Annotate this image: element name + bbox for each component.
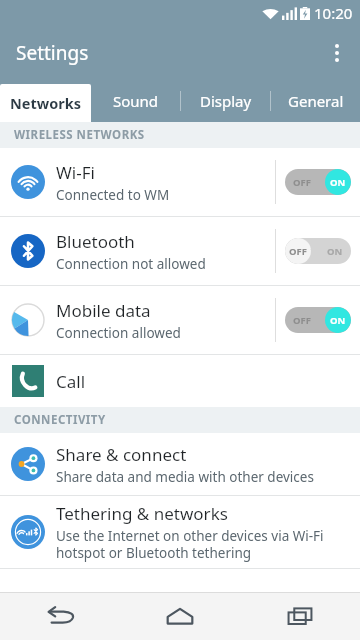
staticText: Use the Internet on other devices via Wi… xyxy=(56,527,324,562)
staticText: Networks xyxy=(10,93,81,113)
button[interactable]: Mobile data xyxy=(0,286,360,354)
staticText: Share data and media with other devices xyxy=(56,468,314,486)
staticText: Share & connect xyxy=(56,443,187,466)
staticText: Wi-Fi xyxy=(56,161,95,184)
staticText: OFF xyxy=(289,245,307,258)
staticText: Display xyxy=(200,91,252,111)
button[interactable]: Wi-Fi xyxy=(0,148,360,216)
staticText: ON xyxy=(327,245,343,258)
staticText: Mobile data xyxy=(56,299,151,322)
staticText: Sound xyxy=(113,91,159,111)
staticText: Connection not allowed xyxy=(56,255,206,273)
button[interactable]: Tethering & networks xyxy=(0,496,360,568)
button[interactable]: Bluetooth switch xyxy=(276,217,360,285)
staticText: OFF xyxy=(293,314,311,327)
staticText: Connected to WM xyxy=(56,186,170,204)
button[interactable]: Call xyxy=(0,355,360,407)
button[interactable]: Mobile data switch xyxy=(276,286,360,354)
button[interactable]: Wi-Fi switch xyxy=(276,148,360,216)
staticText: ON xyxy=(327,314,343,327)
staticText: ON xyxy=(327,176,343,189)
staticText: OFF xyxy=(293,245,311,258)
staticText: Tethering & networks xyxy=(56,502,228,525)
staticText: Call xyxy=(56,370,86,393)
staticText: Bluetooth xyxy=(56,230,135,253)
staticText: WIRELESS NETWORKS xyxy=(14,127,145,143)
staticText: OFF xyxy=(293,176,311,189)
button[interactable]: Home xyxy=(120,592,240,640)
button[interactable]: General xyxy=(271,80,360,122)
staticText: ON xyxy=(330,176,346,189)
staticText: CONNECTIVITY xyxy=(14,412,106,428)
button[interactable]: Bluetooth xyxy=(0,217,360,285)
button[interactable]: Networks xyxy=(0,84,91,122)
staticText: Settings xyxy=(16,40,89,66)
staticText: ON xyxy=(330,314,346,327)
button[interactable]: Share & connect xyxy=(0,433,360,495)
staticText: 10:20 xyxy=(314,3,353,23)
button[interactable]: Display xyxy=(181,80,270,122)
button[interactable]: More options xyxy=(314,26,360,80)
button[interactable]: Back xyxy=(0,592,120,640)
button[interactable]: Recent apps xyxy=(240,592,360,640)
button[interactable]: Sound xyxy=(91,80,180,122)
staticText: Connection allowed xyxy=(56,324,181,342)
staticText: General xyxy=(288,91,344,111)
